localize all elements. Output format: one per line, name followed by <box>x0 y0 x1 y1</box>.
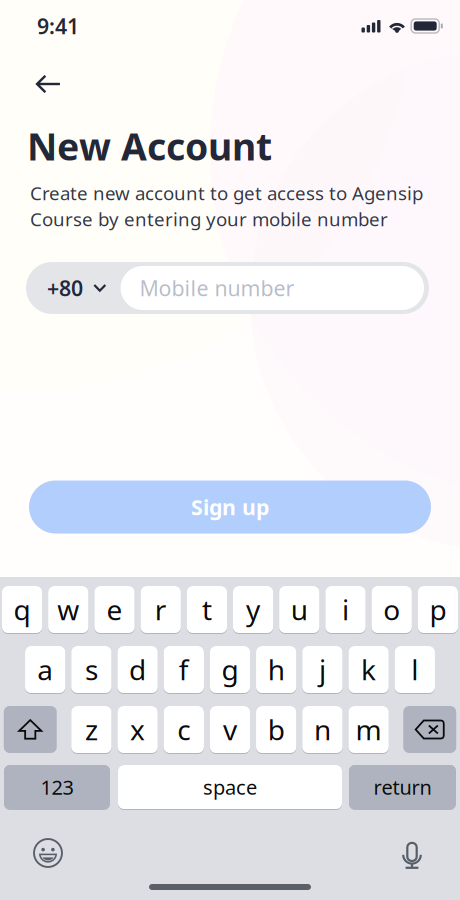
button[interactable]: 123 <box>4 765 110 809</box>
staticText: New Account <box>27 121 272 171</box>
button[interactable]: space <box>118 765 342 809</box>
staticText: space <box>203 774 257 800</box>
button[interactable]: v <box>210 706 250 753</box>
button[interactable]: p <box>418 586 458 633</box>
button[interactable]: Shift <box>4 706 57 753</box>
button[interactable]: Sign up <box>29 480 431 533</box>
staticText: x <box>130 711 145 748</box>
staticText: Create new account to get access to Agen… <box>30 181 423 205</box>
button[interactable]: w <box>48 586 88 633</box>
button[interactable]: r <box>140 586 181 633</box>
staticText: u <box>291 591 308 628</box>
button[interactable]: s <box>71 646 111 693</box>
button[interactable]: Mobile number <box>121 266 424 310</box>
staticText: r <box>155 591 167 628</box>
staticText: f <box>179 651 189 688</box>
staticText: j <box>319 651 326 688</box>
staticText: +80 <box>47 274 83 302</box>
button[interactable]: a <box>25 646 65 693</box>
button[interactable]: Delete <box>403 706 456 753</box>
staticText: c <box>177 711 190 748</box>
button[interactable]: return <box>349 765 456 809</box>
staticText: b <box>268 711 285 748</box>
button[interactable]: Back <box>26 62 70 106</box>
button[interactable]: +80 <box>26 262 121 314</box>
staticText: q <box>14 591 31 628</box>
button[interactable]: y <box>233 586 273 633</box>
button[interactable]: c <box>164 706 204 753</box>
staticText: v <box>223 711 237 748</box>
staticText: p <box>429 591 446 628</box>
staticText: Mobile number <box>140 274 295 302</box>
staticText: h <box>268 651 285 688</box>
staticText: Sign up <box>191 493 269 521</box>
staticText: 9:41 <box>37 12 79 40</box>
button[interactable]: z <box>71 706 111 753</box>
button[interactable]: d <box>117 646 158 693</box>
staticText: o <box>383 591 400 628</box>
staticText: Course by entering your mobile number <box>30 206 388 231</box>
staticText: l <box>411 651 418 688</box>
button[interactable]: e <box>94 586 135 633</box>
button[interactable]: h <box>256 646 296 693</box>
staticText: y <box>246 591 260 628</box>
button[interactable]: k <box>348 646 389 693</box>
button[interactable]: q <box>2 586 42 633</box>
staticText: a <box>37 651 53 688</box>
button[interactable]: j <box>302 646 342 693</box>
button[interactable]: x <box>117 706 158 753</box>
button[interactable]: n <box>302 706 342 753</box>
button[interactable]: Emoji <box>33 838 63 868</box>
button[interactable]: o <box>371 586 412 633</box>
staticText: 123 <box>40 774 73 800</box>
button[interactable]: g <box>210 646 250 693</box>
button[interactable]: b <box>256 706 296 753</box>
button[interactable]: l <box>395 646 435 693</box>
staticText: t <box>202 591 212 628</box>
button[interactable]: m <box>348 706 389 753</box>
staticText: k <box>361 651 376 688</box>
staticText: w <box>57 591 79 628</box>
button[interactable]: f <box>164 646 204 693</box>
button[interactable]: Dictation <box>402 841 422 869</box>
button[interactable]: t <box>187 586 227 633</box>
staticText: z <box>85 711 98 748</box>
staticText: e <box>106 591 122 628</box>
staticText: n <box>314 711 331 748</box>
staticText: return <box>373 774 431 800</box>
button[interactable]: i <box>325 586 366 633</box>
staticText: i <box>342 591 349 628</box>
staticText: s <box>85 651 98 688</box>
button[interactable]: u <box>279 586 319 633</box>
staticText: d <box>129 651 146 688</box>
staticText: g <box>221 651 238 688</box>
staticText: m <box>356 711 382 748</box>
